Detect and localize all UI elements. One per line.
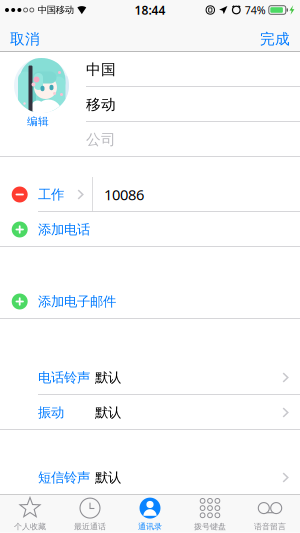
staticText: 编辑 (27, 115, 49, 128)
staticText: 添加电话 (38, 221, 90, 238)
button[interactable]: 添加电子邮件 (0, 284, 300, 319)
button[interactable]: 工作 (0, 177, 300, 212)
staticText: 公司 (86, 130, 116, 148)
staticText: 电话铃声 (38, 369, 90, 386)
staticText: 移动 (86, 95, 116, 113)
staticText: 个人收藏 (14, 522, 46, 531)
button[interactable]: 取消 (2, 26, 48, 52)
button[interactable]: 完成 (252, 26, 298, 52)
button[interactable]: 个人收藏 (0, 494, 60, 533)
staticText: 默认 (95, 404, 121, 421)
button[interactable]: 振动 (0, 395, 300, 430)
staticText: 工作 (38, 186, 64, 203)
button[interactable]: 语音留言 (240, 494, 300, 533)
button[interactable]: 拨号键盘 (180, 494, 240, 533)
staticText: 通讯录 (138, 522, 162, 531)
staticText: 取消 (10, 30, 40, 48)
staticText: 拨号键盘 (194, 522, 226, 531)
button[interactable]: 短信铃声 (0, 460, 300, 495)
staticText: 添加电子邮件 (38, 293, 116, 310)
staticText: 74% (245, 3, 266, 17)
button[interactable]: 通讯录 (120, 494, 180, 533)
staticText: 完成 (260, 30, 290, 48)
staticText: 默认 (95, 369, 121, 386)
button[interactable]: 最近通话 (60, 494, 120, 533)
staticText: 默认 (95, 469, 121, 486)
staticText: 语音留言 (254, 522, 286, 531)
staticText: 18:44 (134, 2, 165, 18)
staticText: 短信铃声 (38, 469, 90, 486)
staticText: 中国移动 (38, 4, 74, 16)
staticText: 10086 (104, 185, 144, 204)
button[interactable]: 电话铃声 (0, 360, 300, 395)
staticText: 中国 (86, 60, 116, 78)
button[interactable]: 编辑 (27, 115, 49, 128)
staticText: 振动 (38, 404, 64, 421)
staticText: 最近通话 (74, 522, 106, 531)
button[interactable]: 添加电话 (0, 212, 300, 247)
